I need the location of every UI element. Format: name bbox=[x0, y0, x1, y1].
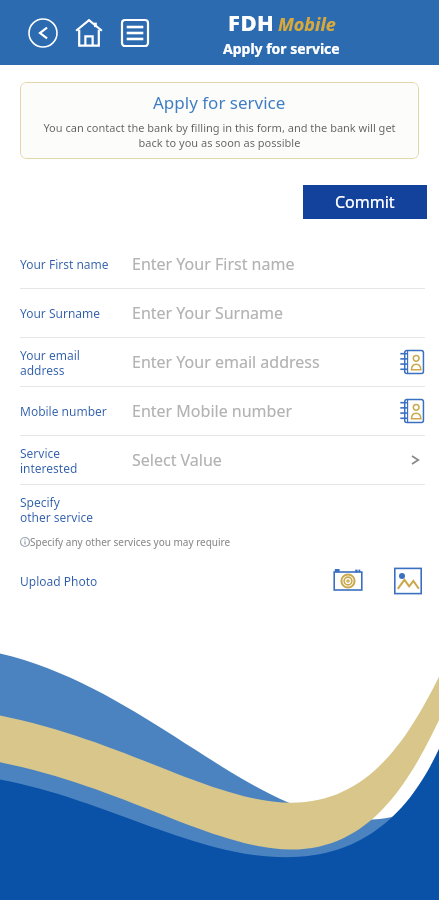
staticText: Your email address bbox=[20, 347, 132, 378]
staticText: Enter Your email address bbox=[132, 351, 399, 373]
button[interactable]: Your First name bbox=[0, 240, 439, 288]
button[interactable]: Back bbox=[26, 16, 60, 50]
button[interactable]: Your email address bbox=[0, 338, 439, 386]
staticText: Enter Mobile number bbox=[132, 400, 399, 422]
staticText: Your First name bbox=[20, 256, 132, 272]
button[interactable]: Your Surname bbox=[0, 289, 439, 337]
button[interactable]: Service interested bbox=[0, 436, 439, 484]
button[interactable]: Commit bbox=[303, 185, 427, 219]
staticText: Commit bbox=[335, 191, 395, 213]
staticText: Mobile bbox=[278, 12, 336, 37]
staticText: Mobile number bbox=[20, 403, 132, 419]
staticText: FDH bbox=[228, 7, 275, 37]
button[interactable]: Choose from gallery bbox=[391, 564, 425, 598]
staticText: Apply for service bbox=[153, 91, 286, 114]
staticText: Apply for service bbox=[223, 39, 340, 58]
button[interactable]: Menu bbox=[118, 16, 152, 50]
staticText: You can contact the bank by filling in t… bbox=[30, 120, 409, 150]
staticText: Upload Photo bbox=[20, 573, 98, 589]
button[interactable]: Specify other service bbox=[0, 485, 439, 533]
staticText: Specify other service bbox=[20, 494, 94, 525]
button[interactable]: Take photo bbox=[331, 564, 365, 598]
staticText: Specify any other services you may requi… bbox=[30, 535, 231, 549]
staticText: Select Value bbox=[132, 449, 405, 471]
staticText: Service interested bbox=[20, 445, 132, 476]
staticText: Enter Your Surname bbox=[132, 302, 425, 324]
button[interactable]: Home bbox=[72, 16, 106, 50]
button[interactable]: Mobile number bbox=[0, 387, 439, 435]
staticText: Your Surname bbox=[20, 305, 132, 321]
staticText: Enter Your First name bbox=[132, 253, 425, 275]
